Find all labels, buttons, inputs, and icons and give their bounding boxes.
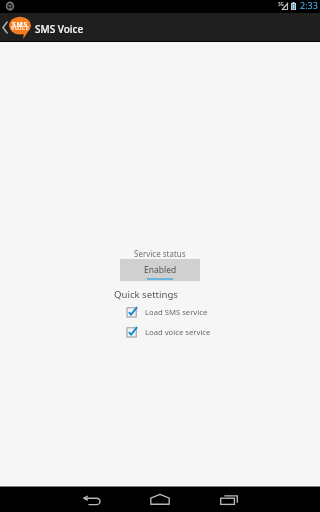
staticText: Service status: [134, 248, 186, 259]
staticText: SMS: [12, 20, 28, 29]
staticText: Load SMS service: [145, 307, 208, 317]
button[interactable]: Back: [68, 487, 116, 512]
button[interactable]: Navigate up, SMS Voice: [0, 13, 95, 42]
staticText: SMS Voice: [35, 22, 84, 36]
staticText: Enabled: [144, 264, 177, 276]
staticText: Quick settings: [114, 288, 178, 301]
button[interactable]: Recent apps: [205, 487, 253, 512]
button[interactable]: Load voice service: [126, 326, 211, 338]
button[interactable]: Load SMS service: [126, 306, 208, 318]
staticText: Load voice service: [145, 327, 211, 337]
button[interactable]: Home: [136, 487, 184, 512]
staticText: 3G: [278, 1, 284, 7]
staticText: 2:33: [300, 0, 318, 11]
button[interactable]: Enabled: [120, 259, 200, 281]
staticText: VOICE: [11, 24, 30, 31]
